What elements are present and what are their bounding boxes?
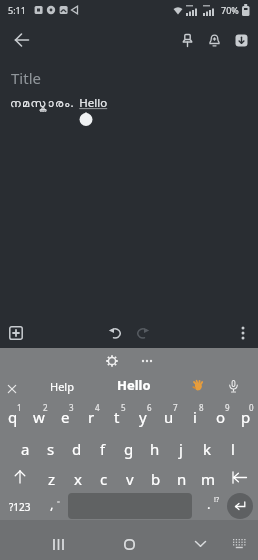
button[interactable]: d	[64, 431, 90, 462]
staticText: e	[61, 407, 70, 427]
staticText: .	[207, 495, 211, 513]
button[interactable]: e	[52, 398, 78, 431]
staticText: Title	[11, 68, 41, 88]
button[interactable]	[222, 492, 258, 520]
button[interactable]: i	[182, 398, 208, 431]
button[interactable]	[8, 26, 36, 54]
button[interactable]: w	[26, 398, 52, 431]
button[interactable]: p	[234, 398, 258, 431]
staticText: r	[88, 407, 95, 427]
staticText: x	[74, 469, 82, 489]
button[interactable]: ,	[39, 492, 65, 520]
staticText: t	[114, 407, 120, 427]
staticText: ,	[50, 495, 54, 513]
button[interactable]: y	[130, 398, 156, 431]
staticText: 5:11	[8, 4, 26, 16]
staticText: 9	[225, 402, 230, 413]
button[interactable]	[0, 462, 39, 492]
button[interactable]	[48, 535, 68, 553]
staticText: h	[150, 439, 160, 459]
button[interactable]	[230, 535, 248, 553]
button[interactable]	[230, 320, 256, 346]
button[interactable]	[101, 350, 123, 372]
staticText: !?	[214, 495, 219, 505]
button[interactable]	[229, 28, 253, 52]
button[interactable]: n	[169, 462, 195, 492]
staticText: നമസ്കാരം. Hello	[10, 95, 108, 111]
button[interactable]	[221, 462, 258, 492]
staticText: d	[72, 439, 82, 459]
button[interactable]: f	[90, 431, 116, 462]
button[interactable]: x	[65, 462, 91, 492]
staticText: 5	[121, 402, 126, 413]
staticText: 7	[173, 402, 178, 413]
button[interactable]: h	[142, 431, 168, 462]
button[interactable]: k	[194, 431, 220, 462]
staticText: i	[193, 407, 197, 427]
button[interactable]	[175, 28, 199, 52]
staticText: b	[151, 469, 161, 489]
button[interactable]: Help	[44, 379, 80, 394]
button[interactable]	[225, 378, 241, 394]
staticText: Help	[50, 379, 74, 394]
staticText: 6	[147, 402, 152, 413]
button[interactable]: v	[117, 462, 143, 492]
button[interactable]: c	[91, 462, 117, 492]
button[interactable]: g	[116, 431, 142, 462]
button[interactable]: b	[143, 462, 169, 492]
button[interactable]	[102, 320, 128, 346]
staticText: y	[139, 407, 147, 427]
button[interactable]: s	[38, 431, 64, 462]
staticText: f	[100, 439, 106, 459]
button[interactable]: l	[220, 431, 246, 462]
button[interactable]	[190, 378, 206, 394]
staticText: 0	[249, 402, 254, 413]
staticText: l	[231, 439, 235, 459]
button[interactable]	[119, 535, 139, 553]
staticText: ?123	[9, 500, 31, 514]
button[interactable]: .	[196, 492, 222, 520]
button[interactable]: z	[39, 462, 65, 492]
button[interactable]: r	[78, 398, 104, 431]
staticText: 1	[17, 402, 22, 413]
staticText: p	[241, 407, 251, 427]
button[interactable]: j	[168, 431, 194, 462]
button[interactable]	[136, 350, 158, 372]
staticText: n	[177, 469, 187, 489]
button[interactable]: t	[104, 398, 130, 431]
button[interactable]	[130, 320, 156, 346]
staticText: k	[203, 439, 212, 459]
staticText: Hello	[117, 376, 151, 394]
staticText: j	[179, 439, 183, 459]
staticText: a	[21, 439, 30, 459]
button[interactable]: q	[0, 398, 26, 431]
staticText: u	[164, 407, 174, 427]
staticText: m	[201, 469, 216, 489]
button[interactable]	[190, 535, 210, 553]
button[interactable]: o	[208, 398, 234, 431]
staticText: 2	[43, 402, 48, 413]
staticText: c	[100, 469, 108, 489]
staticText: 3	[69, 402, 74, 413]
staticText: g	[124, 439, 134, 459]
staticText: 4	[95, 402, 100, 413]
button[interactable]	[4, 381, 20, 397]
staticText: =	[57, 499, 60, 506]
staticText: o	[216, 407, 226, 427]
staticText: v	[126, 469, 134, 489]
button[interactable]: u	[156, 398, 182, 431]
staticText: q	[8, 407, 18, 427]
staticText: 8	[199, 402, 204, 413]
button[interactable]: a	[12, 431, 38, 462]
button[interactable]: Hello	[117, 376, 151, 394]
staticText: 70%	[221, 4, 239, 16]
button[interactable]: m	[195, 462, 221, 492]
staticText: s	[47, 439, 55, 459]
button[interactable]: ?123	[0, 492, 39, 520]
button[interactable]	[202, 28, 226, 52]
staticText: w	[33, 407, 45, 427]
staticText: z	[48, 469, 56, 489]
button[interactable]	[3, 320, 29, 346]
